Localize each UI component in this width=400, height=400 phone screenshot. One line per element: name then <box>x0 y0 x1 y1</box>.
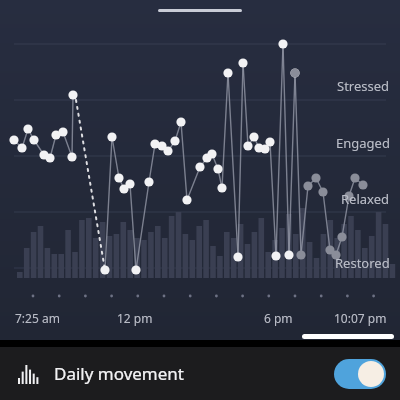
staticText: Relaxed <box>341 190 390 208</box>
button[interactable]: Daily movement toggle <box>334 359 386 389</box>
staticText: Daily movement <box>54 362 184 385</box>
staticText: 7:25 am <box>15 310 60 326</box>
staticText: Restored <box>335 254 390 272</box>
button[interactable]: Daily movement <box>0 347 400 400</box>
staticText: 10:07 pm <box>334 310 387 326</box>
staticText: Stressed <box>337 77 390 95</box>
staticText: 12 pm <box>117 310 153 326</box>
staticText: 6 pm <box>264 310 293 326</box>
staticText: Engaged <box>336 134 390 152</box>
